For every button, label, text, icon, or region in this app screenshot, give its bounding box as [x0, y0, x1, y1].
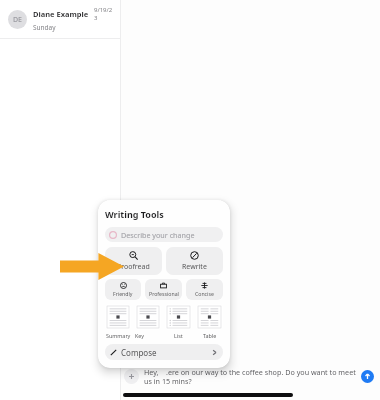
staticText: Diane Example	[33, 9, 89, 19]
button[interactable]: Send	[361, 370, 374, 383]
button[interactable]: Friendly	[105, 279, 141, 300]
staticText: Table	[203, 332, 217, 339]
staticText: Professional	[149, 290, 179, 297]
staticText: 9/19/23	[94, 6, 114, 22]
staticText: Hey, .ere on our way to the coffee shop.…	[144, 367, 357, 386]
button[interactable]: Concise	[186, 279, 223, 300]
button[interactable]: Compose	[105, 344, 223, 360]
staticText: Describe your change	[121, 230, 195, 240]
staticText: Sunday	[33, 23, 56, 32]
button[interactable]: Key Points	[135, 304, 161, 339]
button[interactable]: Add attachment	[124, 369, 139, 384]
staticText: Concise	[195, 290, 214, 297]
staticText: Compose	[121, 347, 211, 358]
staticText: List	[174, 332, 183, 339]
staticText: Friendly	[113, 290, 133, 297]
staticText: Rewrite	[182, 262, 207, 272]
staticText: Summary	[106, 332, 131, 339]
staticText: Writing Tools	[105, 208, 164, 220]
button[interactable]: List	[165, 304, 192, 339]
button[interactable]: Rewrite	[166, 247, 223, 275]
button[interactable]: Summary	[105, 304, 131, 339]
button[interactable]: DE	[0, 0, 120, 38]
staticText: Proofread	[117, 262, 150, 272]
staticText: DE	[13, 15, 23, 25]
staticText: Key Points	[135, 332, 161, 339]
button[interactable]: Describe your change	[105, 227, 223, 242]
button[interactable]: Table	[196, 304, 223, 339]
button[interactable]: Professional	[145, 279, 182, 300]
button[interactable]: Proofread	[105, 247, 162, 275]
